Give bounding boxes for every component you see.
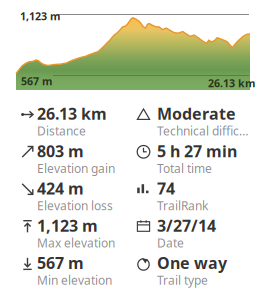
staticText: 26.13 km [208,76,255,90]
staticText: 5 h 27 min [157,140,237,161]
button[interactable]: 26.13 km [20,103,136,134]
button[interactable]: 74 [136,178,266,209]
staticText: Max elevation [37,235,115,251]
staticText: 3/27/14 [157,215,216,236]
staticText: 424 m [37,178,84,199]
button[interactable]: 803 m [20,140,136,171]
button[interactable]: 424 m [20,178,136,209]
button[interactable]: 3/27/14 [136,215,266,246]
staticText: Moderate [157,103,236,124]
staticText: Date [157,235,184,251]
staticText: 74 [157,178,175,199]
staticText: One way [157,252,227,273]
staticText: Trail type [157,272,208,288]
staticText: Distance [37,123,86,139]
staticText: Elevation loss [37,198,113,213]
staticText: 567 m [37,252,84,273]
button[interactable]: 567 m [20,252,136,283]
staticText: Total time [157,160,212,176]
button[interactable]: 5 h 27 min [136,140,266,171]
button[interactable]: One way [136,252,266,283]
staticText: Technical diffic… [157,123,248,139]
staticText: 803 m [37,140,84,161]
staticText: 1,123 m [20,9,60,23]
staticText: 567 m [21,74,52,88]
staticText: Min elevation [37,272,112,288]
staticText: 1,123 m [37,215,98,236]
button[interactable]: Moderate [136,103,266,134]
button[interactable]: 1,123 m [20,215,136,246]
staticText: TrailRank [157,198,208,213]
staticText: 26.13 km [37,103,107,124]
staticText: Elevation gain [37,160,115,176]
